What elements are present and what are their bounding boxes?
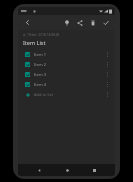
staticText: vr, 18 dec. 2018 14:08:06 bbox=[23, 33, 60, 37]
staticText: Item 2 bbox=[34, 62, 104, 67]
button[interactable]: Home bbox=[61, 164, 73, 176]
staticText: Item 4 bbox=[34, 82, 104, 87]
button[interactable]: Done bbox=[100, 17, 111, 28]
button[interactable]: Checked Item 2 bbox=[25, 62, 30, 67]
staticText: Add to list bbox=[34, 92, 104, 97]
button[interactable]: Checked Item 2 bbox=[23, 59, 111, 69]
button[interactable]: Checked Item 3 bbox=[23, 69, 111, 79]
button[interactable]: Pin note bbox=[61, 17, 72, 28]
button[interactable]: More options bbox=[104, 90, 111, 99]
button[interactable]: Checked Item 1 bbox=[25, 52, 30, 57]
staticText: Item List bbox=[23, 39, 46, 46]
button[interactable]: More options for Item 2 bbox=[104, 60, 111, 69]
button[interactable]: Checked Item 1 bbox=[23, 49, 111, 59]
button[interactable]: Add to list bbox=[23, 89, 111, 99]
staticText: Item 1 bbox=[34, 52, 104, 57]
button[interactable]: Back bbox=[22, 17, 33, 28]
button[interactable]: More options for Item 1 bbox=[104, 50, 111, 59]
button[interactable]: Checked Item 3 bbox=[25, 72, 30, 77]
button[interactable]: Delete bbox=[87, 17, 98, 28]
button[interactable]: Checked Item 4 bbox=[25, 82, 30, 87]
button[interactable]: Checked Item 4 bbox=[23, 79, 111, 89]
button[interactable]: Recent apps bbox=[88, 164, 100, 176]
staticText: Item 3 bbox=[34, 72, 104, 77]
button[interactable]: More options for Item 4 bbox=[104, 80, 111, 89]
button[interactable]: Back bbox=[33, 164, 45, 176]
button[interactable]: More options for Item 3 bbox=[104, 70, 111, 79]
button[interactable]: Share bbox=[74, 17, 85, 28]
